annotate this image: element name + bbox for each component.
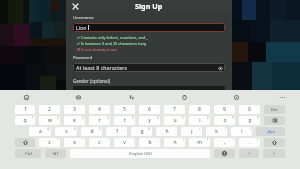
staticText: &: [148, 127, 151, 131]
button[interactable]: l: [231, 127, 252, 136]
button[interactable]: Ctrl: [15, 149, 41, 158]
button[interactable]: c: [89, 138, 110, 147]
staticText: *: [57, 138, 59, 142]
button[interactable]: m: [189, 138, 210, 147]
button[interactable]: .: [239, 138, 260, 147]
button[interactable]: p: [239, 116, 260, 125]
staticText: ‹: [248, 150, 250, 157]
button[interactable]: backspace: [264, 116, 285, 125]
button[interactable]: o: [214, 116, 235, 125]
button[interactable]: Lion: [73, 23, 225, 32]
button[interactable]: ,: [214, 138, 235, 147]
button[interactable]: gif: [73, 92, 83, 102]
button[interactable]: 0: [239, 105, 260, 114]
button[interactable]: 8: [189, 105, 210, 114]
staticText: 4: [107, 116, 109, 120]
button[interactable]: r: [89, 116, 110, 125]
staticText: 3: [73, 106, 76, 113]
button[interactable]: t: [114, 116, 135, 125]
button[interactable]: d: [81, 127, 102, 136]
button[interactable]: sticker: [21, 92, 31, 102]
staticText: .: [249, 139, 251, 146]
button[interactable]: !#1: [45, 149, 66, 158]
staticText: x: [73, 139, 76, 146]
staticText: 7: [182, 116, 184, 120]
button[interactable]: 1: [15, 105, 35, 114]
button[interactable]: Close: [70, 1, 81, 12]
staticText: 6: [157, 116, 159, 120]
staticText: c: [98, 139, 101, 146]
button[interactable]: j: [181, 127, 202, 136]
button[interactable]: shift: [15, 138, 35, 147]
staticText: Del: [271, 107, 278, 113]
button[interactable]: q: [15, 116, 35, 125]
staticText: k: [215, 128, 218, 135]
staticText: s: [65, 128, 68, 135]
button[interactable]: b: [139, 138, 160, 147]
button[interactable]: e: [64, 116, 85, 125]
button[interactable]: y: [139, 116, 160, 125]
staticText: p: [248, 117, 252, 124]
button[interactable]: At least 8 characters: [73, 63, 225, 72]
button[interactable]: Дал: [256, 127, 285, 136]
button[interactable]: a: [29, 127, 51, 136]
staticText: g: [140, 128, 144, 135]
button[interactable]: settings: [231, 92, 241, 102]
button[interactable]: [73, 86, 225, 96]
button[interactable]: n: [164, 138, 185, 147]
staticText: English (US): [129, 151, 152, 157]
button[interactable]: u: [164, 116, 185, 125]
staticText: f: [116, 128, 118, 135]
button[interactable]: x: [64, 138, 85, 147]
staticText: q: [23, 117, 27, 124]
staticText: 4: [98, 106, 101, 113]
button[interactable]: i: [189, 116, 210, 125]
staticText: ?: [257, 138, 259, 142]
staticText: !#1: [52, 151, 59, 157]
staticText: 1: [24, 106, 27, 113]
staticText: j: [191, 128, 193, 135]
button[interactable]: s: [55, 127, 77, 136]
staticText: ?: [207, 138, 209, 142]
staticText: Username: [73, 15, 94, 21]
staticText: ›: [273, 150, 275, 157]
staticText: Password: [73, 55, 93, 61]
button[interactable]: 2: [39, 105, 60, 114]
staticText: 5: [132, 116, 134, 120]
staticText: v: [123, 139, 126, 146]
button[interactable]: clipboard: [179, 92, 189, 102]
staticText: w: [48, 117, 52, 124]
staticText: z: [48, 139, 51, 146]
button[interactable]: z: [39, 138, 60, 147]
button[interactable]: 6: [139, 105, 160, 114]
button[interactable]: 9: [214, 105, 235, 114]
staticText: h: [165, 128, 169, 135]
staticText: $: [99, 127, 101, 131]
staticText: Ctrl: [25, 151, 32, 157]
staticText: d: [90, 128, 94, 135]
button[interactable]: k: [206, 127, 227, 136]
button[interactable]: 5: [114, 105, 135, 114]
button[interactable]: h: [156, 127, 177, 136]
button[interactable]: f: [106, 127, 127, 136]
button[interactable]: translate: [126, 92, 136, 102]
button[interactable]: 7: [164, 105, 185, 114]
staticText: 3: [82, 116, 84, 120]
button[interactable]: shift: [264, 138, 285, 147]
button[interactable]: globe: [214, 149, 235, 158]
staticText: ': [108, 138, 109, 142]
button[interactable]: g: [131, 127, 152, 136]
staticText: ": [82, 138, 84, 142]
button[interactable]: v: [114, 138, 135, 147]
button[interactable]: Del: [264, 105, 285, 114]
staticText: Lion: [76, 24, 87, 31]
button[interactable]: w: [39, 116, 60, 125]
button[interactable]: Show password: [217, 65, 223, 71]
button[interactable]: More options: [277, 92, 287, 102]
button[interactable]: ›: [263, 149, 285, 158]
button[interactable]: 3: [64, 105, 85, 114]
button[interactable]: 4: [89, 105, 110, 114]
button[interactable]: English (US): [70, 149, 210, 158]
button[interactable]: ‹: [239, 149, 259, 158]
staticText: r: [98, 117, 101, 124]
